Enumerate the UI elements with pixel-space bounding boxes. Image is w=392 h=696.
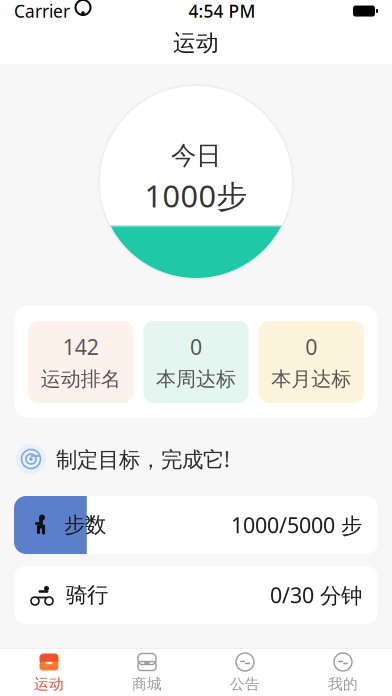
staticText: 0 — [190, 333, 202, 361]
staticText: 4:54 PM — [188, 0, 255, 22]
staticText: 运动排名 — [41, 367, 121, 391]
button[interactable]: 公告 — [196, 649, 294, 696]
staticText: 本月达标 — [271, 367, 351, 391]
staticText: 制定目标，完成它! — [56, 445, 230, 473]
staticText: 运动 — [173, 29, 219, 57]
button[interactable]: 运动 — [0, 649, 98, 696]
staticText: 商城 — [132, 675, 162, 693]
staticText: 公告 — [230, 675, 260, 693]
staticText: 1000步 — [144, 175, 247, 216]
staticText: 0 — [305, 333, 317, 361]
staticText: 骑行 — [66, 582, 108, 608]
button[interactable]: 骑行 — [0, 566, 392, 624]
staticText: 0/30 分钟 — [270, 581, 362, 609]
button[interactable]: 步数 — [0, 496, 392, 554]
staticText: 142 — [63, 333, 99, 361]
staticText: 步数 — [64, 512, 106, 538]
staticText: 我的 — [328, 675, 358, 693]
staticText: 运动 — [34, 675, 64, 693]
staticText: 本周达标 — [156, 367, 236, 391]
button[interactable]: 商城 — [98, 649, 196, 696]
staticText: Carrier — [14, 0, 70, 22]
button[interactable]: 我的 — [294, 649, 392, 696]
staticText: 1000/5000 步 — [231, 511, 362, 539]
staticText: 今日 — [171, 140, 221, 171]
